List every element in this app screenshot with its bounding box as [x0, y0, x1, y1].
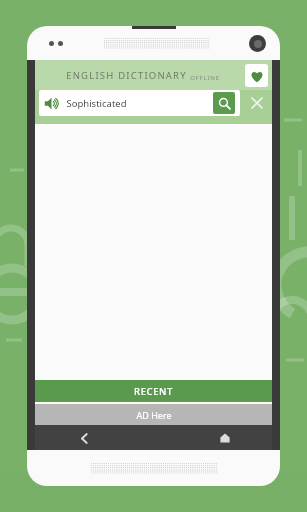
button[interactable]: AD Here [35, 404, 272, 425]
button[interactable]: Pronounce [44, 96, 59, 111]
button[interactable]: Clear [246, 92, 268, 114]
staticText: Sophisticated [66, 97, 127, 110]
button[interactable]: Search [213, 92, 235, 114]
button[interactable]: RECENT [35, 380, 272, 402]
staticText: RECENT [134, 385, 173, 398]
button[interactable]: Favourites [245, 64, 268, 87]
staticText: OFFLINE [190, 74, 220, 82]
button[interactable]: Back [73, 427, 95, 449]
staticText: ENGLISH DICTIONARY [66, 69, 187, 82]
button[interactable]: Pronounce [39, 90, 240, 116]
button[interactable]: Home [214, 427, 236, 449]
staticText: AD Here [136, 409, 172, 421]
